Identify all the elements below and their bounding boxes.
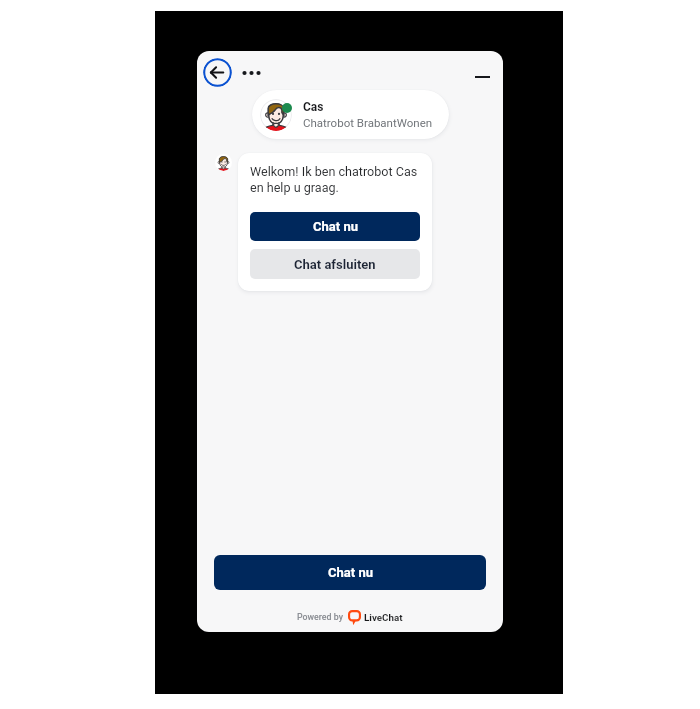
staticText: Chat nu (313, 219, 358, 234)
button[interactable]: Cas (252, 90, 449, 139)
button[interactable]: Chat nu (214, 555, 486, 590)
staticText: Powered by (297, 612, 343, 622)
staticText: Cas (303, 100, 324, 114)
button[interactable]: Chat afsluiten (250, 249, 420, 279)
staticText: Welkom! Ik ben chatrobot Cas en help u g… (250, 164, 420, 196)
button[interactable]: Back (203, 58, 232, 87)
staticText: Chatrobot BrabantWonen (303, 116, 433, 129)
staticText: LiveChat (364, 612, 403, 623)
staticText: Chat afsluiten (294, 257, 376, 272)
staticText: Chat nu (328, 565, 373, 580)
button[interactable]: Minimize (467, 67, 497, 87)
button[interactable]: Chat nu (250, 212, 420, 241)
button[interactable]: More options (236, 63, 262, 83)
